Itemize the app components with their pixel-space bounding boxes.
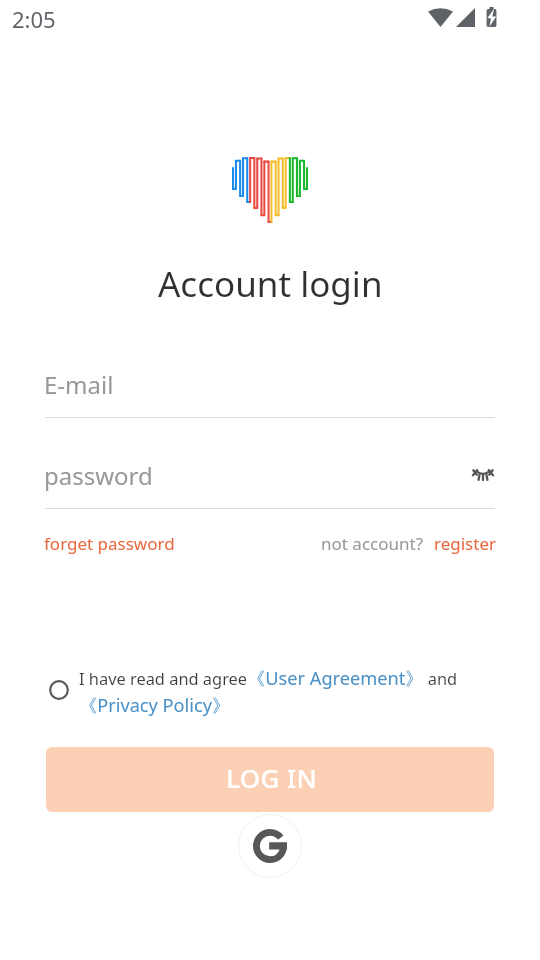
button[interactable]: LOG IN xyxy=(46,747,494,812)
staticText: LOG IN xyxy=(226,760,318,795)
staticText: I have read and agree《User Agreement》 an… xyxy=(79,666,479,718)
staticText: E-mail xyxy=(44,368,114,401)
staticText: not account? xyxy=(321,532,424,555)
staticText: register xyxy=(434,532,496,555)
staticText: forget password xyxy=(44,532,175,555)
staticText: 2:05 xyxy=(12,4,56,34)
button[interactable]: Show password xyxy=(464,455,502,493)
staticText: Account login xyxy=(158,260,383,308)
button[interactable]: Sign in with Google xyxy=(238,814,302,878)
button[interactable]: register xyxy=(434,532,496,555)
button[interactable]: forget password xyxy=(44,532,175,555)
button[interactable]: Agree to terms xyxy=(45,676,73,704)
staticText: password xyxy=(44,459,153,492)
